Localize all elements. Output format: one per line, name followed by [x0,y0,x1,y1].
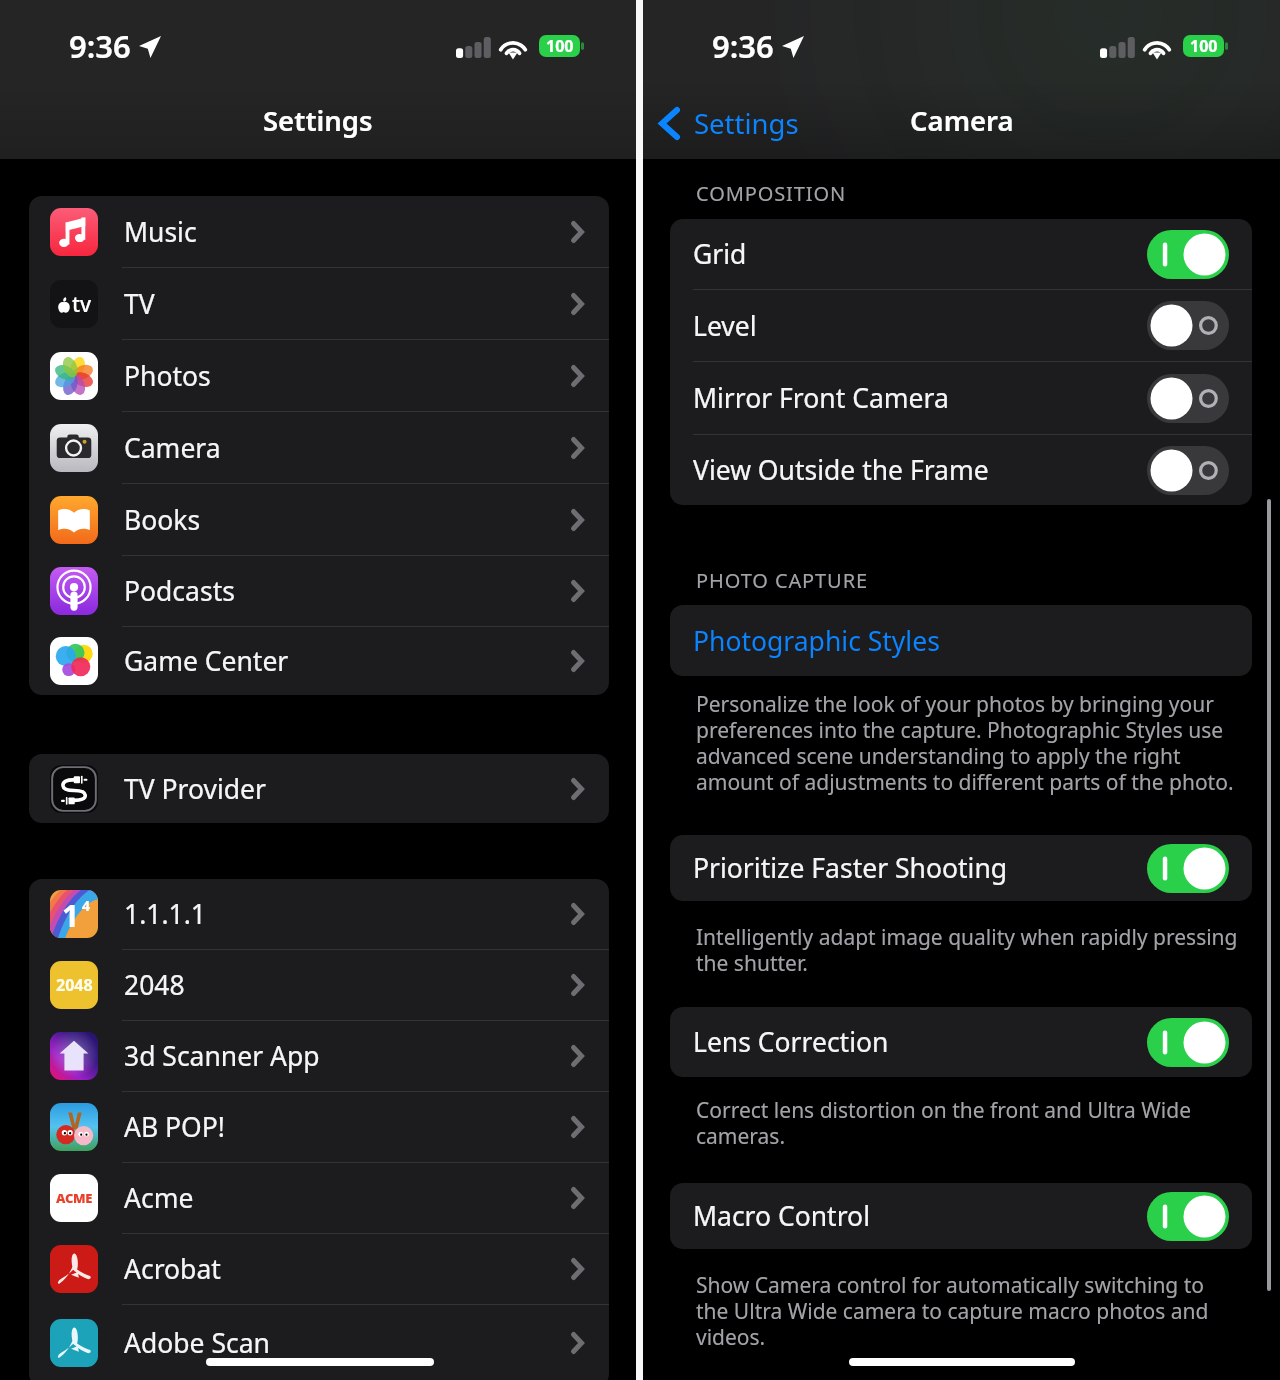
button[interactable]: Level [670,290,1252,361]
button[interactable]: Mirror Front Camera [670,362,1252,434]
staticText: Photographic Styles [693,623,940,659]
button[interactable]: Prioritize Faster Shooting [670,835,1252,901]
button[interactable]: Game Center [29,627,609,695]
button[interactable]: On [1147,844,1229,893]
staticText: 1.1.1.1 [124,896,206,932]
staticText: Prioritize Faster Shooting [693,850,1008,886]
button[interactable]: Books [29,484,609,555]
staticText: Intelligently adapt image quality when r… [696,923,1238,978]
staticText: Camera [124,430,221,466]
staticText: Camera [910,102,1014,139]
button[interactable]: Adobe Scan [29,1305,609,1380]
staticText: Grid [693,236,747,272]
staticText: COMPOSITION [696,180,847,207]
button[interactable]: Grid [670,219,1252,289]
button[interactable]: Off [1147,301,1229,350]
button[interactable]: Acrobat [29,1234,609,1304]
staticText: Podcasts [124,573,235,609]
button[interactable]: 2048 [29,950,609,1020]
staticText: 100 [546,35,574,57]
staticText: Settings [263,102,373,139]
staticText: Macro Control [693,1198,870,1234]
button[interactable]: View Outside the Frame [670,435,1252,505]
staticText: 1 [62,895,80,936]
staticText: TV Provider [124,771,266,807]
staticText: Adobe Scan [124,1325,270,1361]
staticText: Music [124,214,197,250]
button[interactable]: Podcasts [29,556,609,626]
staticText: tv [72,290,92,319]
button[interactable]: Photographic Styles [670,605,1252,676]
button[interactable]: ACME [29,1163,609,1233]
staticText: 9:36 [69,25,131,67]
staticText: Personalize the look of your photos by b… [696,690,1238,797]
button[interactable]: 3d Scanner App [29,1021,609,1091]
button[interactable]: On [1147,230,1229,279]
staticText: Game Center [124,643,289,679]
button[interactable]: Photos [29,340,609,411]
staticText: 2048 [56,974,93,996]
staticText: 3d Scanner App [124,1038,320,1074]
button[interactable]: AB POP! [29,1092,609,1162]
button[interactable]: On [1147,1018,1229,1067]
button[interactable]: Off [1147,374,1229,423]
staticText: 2048 [124,967,185,1003]
staticText: TV [124,286,155,322]
button[interactable]: Off [1147,446,1229,495]
staticText: ACME [56,1189,93,1207]
button[interactable]: Macro Control [670,1183,1252,1249]
staticText: Show Camera control for automatically sw… [696,1271,1238,1352]
button[interactable]: TV Provider [29,754,609,823]
button[interactable]: Back to Settings [659,105,799,142]
staticText: 4 [82,896,91,915]
staticText: Level [693,308,757,344]
staticText: Acme [124,1180,194,1216]
button[interactable]: On [1147,1192,1229,1241]
button[interactable]: Lens Correction [670,1007,1252,1077]
staticText: Acrobat [124,1251,221,1287]
button[interactable]: tv [29,268,609,339]
staticText: Photos [124,358,211,394]
staticText: Settings [694,105,799,142]
button[interactable]: 1 [29,879,609,949]
button[interactable]: Music [29,196,609,267]
button[interactable]: Camera [29,412,609,483]
staticText: 9:36 [712,25,774,67]
staticText: Correct lens distortion on the front and… [696,1096,1238,1151]
staticText: Lens Correction [693,1024,889,1060]
staticText: 100 [1190,35,1218,57]
staticText: View Outside the Frame [693,452,989,488]
staticText: PHOTO CAPTURE [696,567,868,594]
staticText: Books [124,502,201,538]
staticText: Mirror Front Camera [693,380,949,416]
staticText: AB POP! [124,1109,225,1145]
